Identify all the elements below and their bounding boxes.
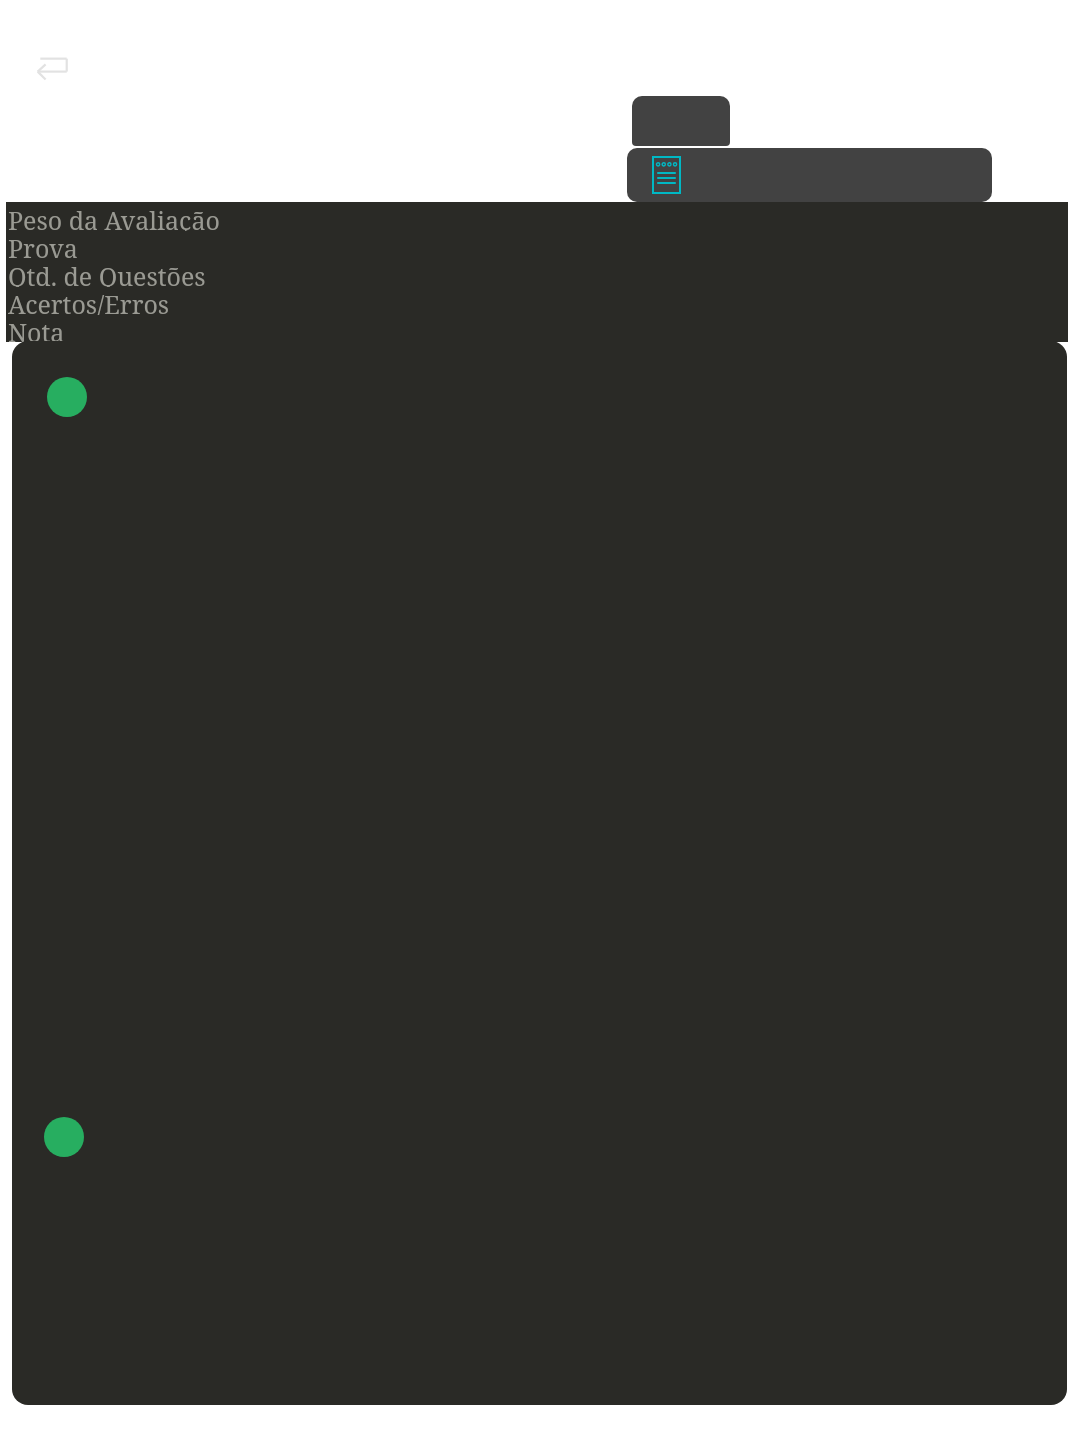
staticText: Prova xyxy=(8,231,78,259)
button[interactable]: Aba xyxy=(632,96,730,146)
button[interactable]: Peso da Avaliação xyxy=(8,203,220,231)
button[interactable]: Status aprovado xyxy=(44,1117,84,1157)
button[interactable]: Qtd. de Questões xyxy=(8,259,206,287)
button[interactable]: Documento xyxy=(627,148,992,202)
button[interactable]: Status aprovado xyxy=(47,377,87,417)
staticText: Qtd. de Questões xyxy=(8,259,206,287)
button[interactable]: Nota xyxy=(8,315,65,343)
button[interactable]: Voltar xyxy=(28,50,72,86)
staticText: Nota xyxy=(8,315,65,343)
staticText: Acertos/Erros xyxy=(8,287,170,315)
button[interactable]: Acertos/Erros xyxy=(8,287,170,315)
button[interactable]: Prova xyxy=(8,231,78,259)
other: Documento xyxy=(652,156,681,194)
staticText: Peso da Avaliação xyxy=(8,203,220,231)
